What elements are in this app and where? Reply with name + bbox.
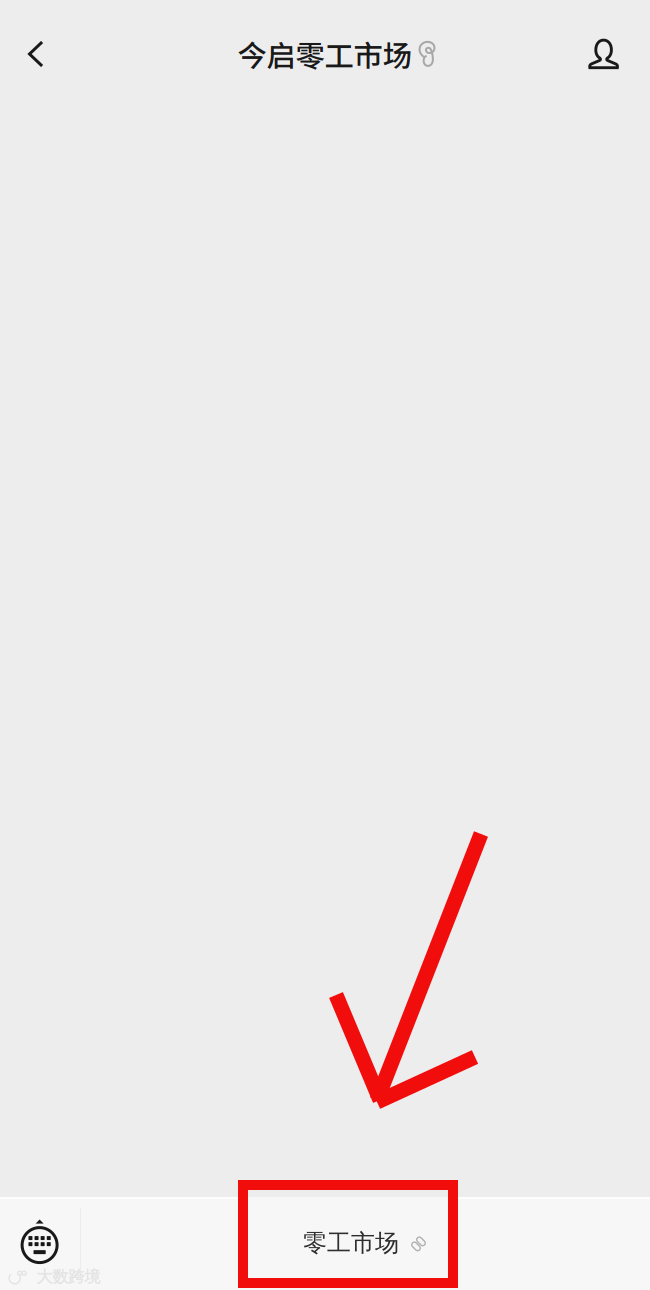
button[interactable]: Back: [10, 26, 62, 82]
button[interactable]: Contact: [577, 26, 631, 82]
staticText: 今启零工市场: [237, 33, 411, 75]
staticText: 大数跨境: [36, 1267, 100, 1287]
button[interactable]: Keyboard: [4, 1198, 80, 1290]
button[interactable]: 零工市场: [238, 1197, 458, 1290]
staticText: 零工市场: [303, 1228, 399, 1258]
